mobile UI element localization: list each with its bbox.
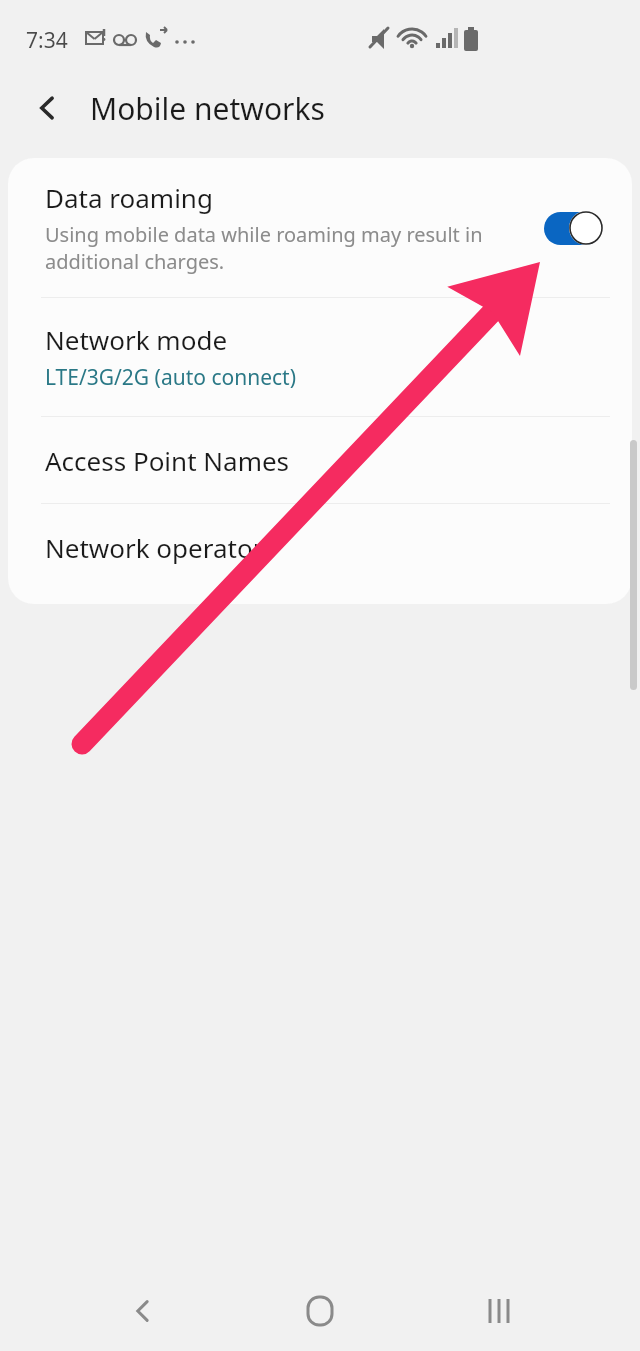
button[interactable]: Recent apps [470,1271,530,1351]
button[interactable]: Network mode [8,298,632,416]
staticText: Data roaming [45,180,213,215]
staticText: Access Point Names [45,443,290,478]
button[interactable]: Home [290,1271,350,1351]
staticText: 7:34 [26,26,68,55]
button[interactable]: Back [113,1271,173,1351]
button[interactable]: Data roaming toggle [544,208,606,248]
staticText: Using mobile data while roaming may resu… [45,221,528,275]
button[interactable]: Back [26,86,70,130]
staticText: Network mode [45,322,228,357]
staticText: Network operators [45,530,276,565]
button[interactable]: Data roaming [8,158,632,297]
button[interactable]: Access Point Names [8,417,632,503]
staticText: LTE/3G/2G (auto connect) [45,363,296,392]
button[interactable]: Network operators [8,504,632,590]
staticText: Mobile networks [90,88,325,129]
